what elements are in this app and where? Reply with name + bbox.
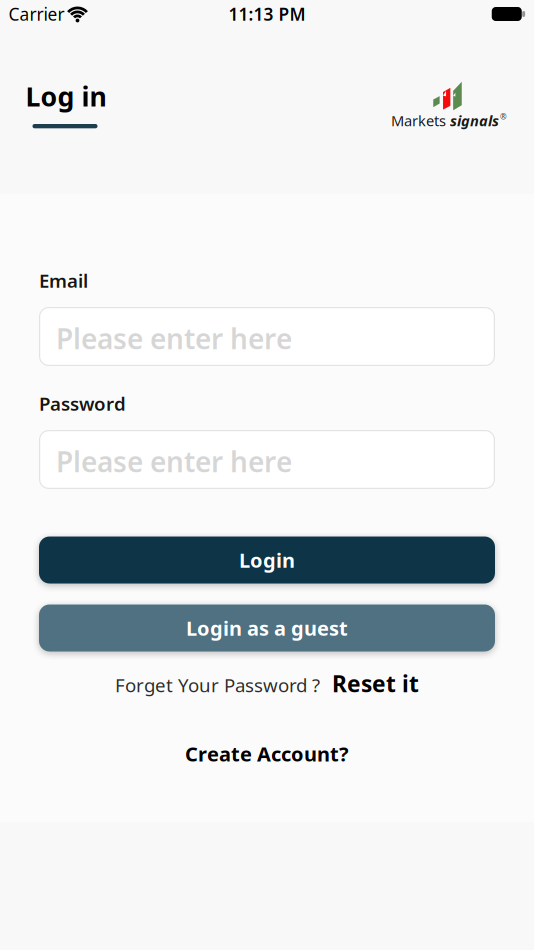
staticText: Markets signals: [391, 111, 499, 130]
button[interactable]: Email: [39, 307, 495, 366]
staticText: Password: [39, 391, 126, 416]
staticText: Log in: [25, 78, 106, 114]
button[interactable]: Password: [39, 430, 495, 489]
staticText: Email: [39, 268, 88, 293]
staticText: Please enter here: [56, 443, 292, 480]
button[interactable]: Create Account?: [185, 740, 349, 767]
staticText: ®: [500, 111, 507, 122]
staticText: Please enter here: [56, 320, 292, 357]
staticText: Reset it: [332, 668, 419, 699]
button[interactable]: Reset it: [332, 668, 419, 699]
staticText: Login as a guest: [186, 615, 348, 641]
staticText: Carrier: [8, 2, 64, 25]
button[interactable]: Login as a guest: [39, 604, 495, 651]
staticText: Create Account?: [185, 740, 349, 767]
staticText: Forget Your Password ?: [115, 673, 320, 697]
button[interactable]: Login: [39, 536, 495, 583]
staticText: 11:13 PM: [228, 2, 305, 25]
staticText: Login: [239, 547, 295, 573]
